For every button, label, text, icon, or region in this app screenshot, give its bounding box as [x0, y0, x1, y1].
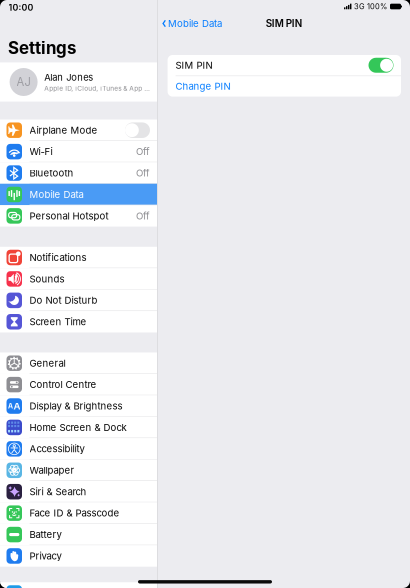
staticText: Off: [136, 167, 150, 179]
staticText: Alan Jones: [44, 72, 93, 83]
staticText: Home Screen & Dock: [29, 422, 126, 433]
staticText: Control Centre: [29, 379, 96, 390]
staticText: 100%: [367, 2, 387, 11]
staticText: Wi-Fi: [29, 146, 52, 157]
staticText: 3G: [354, 2, 365, 11]
button[interactable]: Home Screen & Dock: [0, 417, 157, 438]
button[interactable]: Personal Hotspot: [0, 205, 157, 227]
staticText: Off: [136, 146, 150, 157]
staticText: A: [13, 400, 20, 412]
button[interactable]: Sounds: [0, 268, 157, 290]
button[interactable]: Airplane Mode: [0, 119, 157, 141]
staticText: Privacy: [29, 550, 61, 562]
button[interactable]: Siri & Search: [0, 481, 157, 502]
button[interactable]: A: [0, 395, 157, 417]
button[interactable]: General: [0, 352, 157, 374]
staticText: Notifications: [29, 252, 86, 263]
staticText: 10:00: [8, 2, 33, 13]
staticText: Do Not Disturb: [29, 294, 97, 306]
staticText: Airplane Mode: [29, 124, 97, 136]
staticText: Off: [136, 210, 150, 222]
button[interactable]: Face ID & Passcode: [0, 502, 157, 524]
staticText: Settings: [8, 38, 76, 58]
staticText: Accessibility: [29, 443, 84, 455]
staticText: General: [29, 357, 65, 369]
staticText: Apple ID, iCloud, iTunes & App St…: [44, 84, 151, 92]
staticText: Display & Brightness: [29, 400, 122, 412]
button[interactable]: Bluetooth: [0, 162, 157, 184]
button[interactable]: Privacy: [0, 545, 157, 567]
staticText: Mobile Data: [168, 18, 222, 29]
staticText: A: [8, 402, 13, 410]
button[interactable]: Notifications: [0, 247, 157, 268]
staticText: Mobile Data: [29, 189, 83, 200]
staticText: SIM PIN: [176, 59, 213, 71]
button[interactable]: Do Not Disturb: [0, 290, 157, 311]
staticText: Change PIN: [176, 80, 231, 92]
staticText: Face ID & Passcode: [29, 507, 119, 519]
button[interactable]: Battery: [0, 524, 157, 545]
button[interactable]: Wi-Fi: [0, 141, 157, 162]
button[interactable]: SIM PIN: [168, 55, 401, 75]
staticText: AJ: [17, 75, 31, 89]
button[interactable]: Screen Time: [0, 311, 157, 332]
staticText: Screen Time: [29, 316, 86, 328]
button[interactable]: Change PIN: [168, 76, 401, 97]
button[interactable]: Control Centre: [0, 374, 157, 395]
button[interactable]: Mobile Data: [158, 14, 228, 32]
button[interactable]: A: [0, 582, 157, 588]
staticText: Battery: [29, 529, 61, 540]
staticText: Sounds: [29, 273, 64, 285]
staticText: Siri & Search: [29, 486, 86, 497]
staticText: SIM PIN: [266, 17, 302, 29]
staticText: Wallpaper: [29, 464, 74, 476]
button[interactable]: Accessibility: [0, 438, 157, 460]
button[interactable]: Wallpaper: [0, 460, 157, 481]
staticText: Personal Hotspot: [29, 210, 108, 222]
button[interactable]: Mobile Data: [0, 184, 157, 205]
staticText: Bluetooth: [29, 167, 73, 179]
button[interactable]: AJ: [0, 62, 157, 102]
